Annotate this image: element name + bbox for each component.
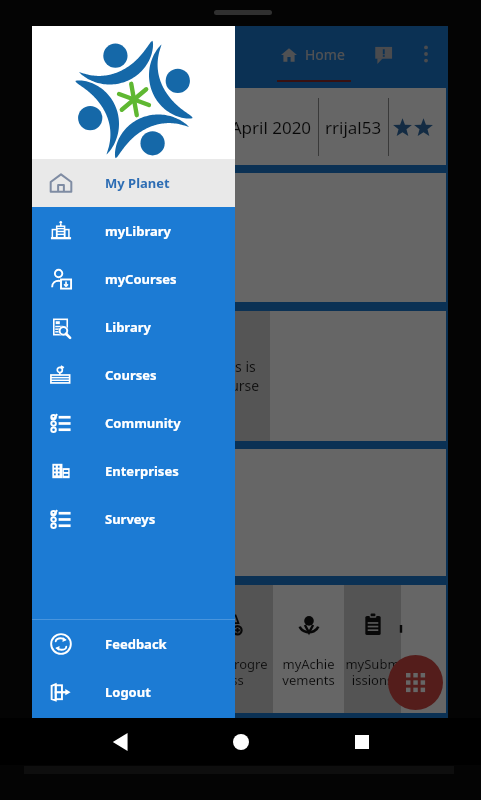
staticText: My Planet	[105, 174, 170, 192]
button[interactable]: Library	[32, 303, 235, 351]
button[interactable]	[34, 173, 446, 302]
staticText: Community	[105, 414, 181, 432]
button[interactable]: More options	[406, 26, 446, 82]
button[interactable]: Home	[272, 26, 356, 87]
staticText: myCourses	[105, 270, 177, 288]
button[interactable]: myLibrary	[34, 585, 60, 713]
staticText: Library	[105, 318, 151, 336]
button[interactable]: Back	[96, 718, 143, 765]
button[interactable]: Surveys	[32, 495, 235, 543]
staticText: mySubm issions	[344, 655, 401, 688]
button[interactable]: Apps	[388, 655, 443, 710]
staticText: Tue, April 2020	[193, 116, 312, 139]
staticText: Logout	[105, 683, 151, 701]
staticText: Feedback	[105, 635, 167, 653]
staticText: Home	[305, 45, 345, 64]
button[interactable]: Feedback	[362, 26, 406, 82]
button[interactable]: My Planet	[32, 159, 235, 207]
button[interactable]: myAchie vements	[273, 585, 344, 713]
button[interactable]: Logout	[32, 668, 235, 716]
button[interactable]: myLibrary	[32, 207, 235, 255]
staticText: myLibrary	[105, 222, 172, 240]
button[interactable]: mySubm issions	[344, 585, 401, 713]
button[interactable]: myTeam	[131, 585, 202, 713]
button[interactable]: This is	[34, 311, 446, 441]
staticText: Courses	[105, 366, 157, 384]
button[interactable]: Feedback	[32, 620, 235, 668]
staticText: Enterprises	[105, 462, 179, 480]
staticText: This is	[215, 357, 256, 376]
staticText: myProgre ss	[202, 655, 273, 688]
button[interactable]: Recents	[338, 718, 385, 765]
staticText: course	[215, 376, 260, 395]
button[interactable]	[34, 449, 446, 576]
button[interactable]: myProgre ss	[202, 585, 273, 713]
staticText: Surveys	[105, 510, 156, 528]
button[interactable]: Community	[32, 399, 235, 447]
button[interactable]: Enterprises	[32, 447, 235, 495]
staticText: myAchie vements	[273, 655, 344, 688]
button[interactable]: myCourses	[60, 585, 131, 713]
button[interactable]: Courses	[32, 351, 235, 399]
button[interactable]: Home	[217, 718, 264, 765]
button[interactable]: myCourses	[32, 255, 235, 303]
staticText: rrijal53	[325, 116, 382, 139]
